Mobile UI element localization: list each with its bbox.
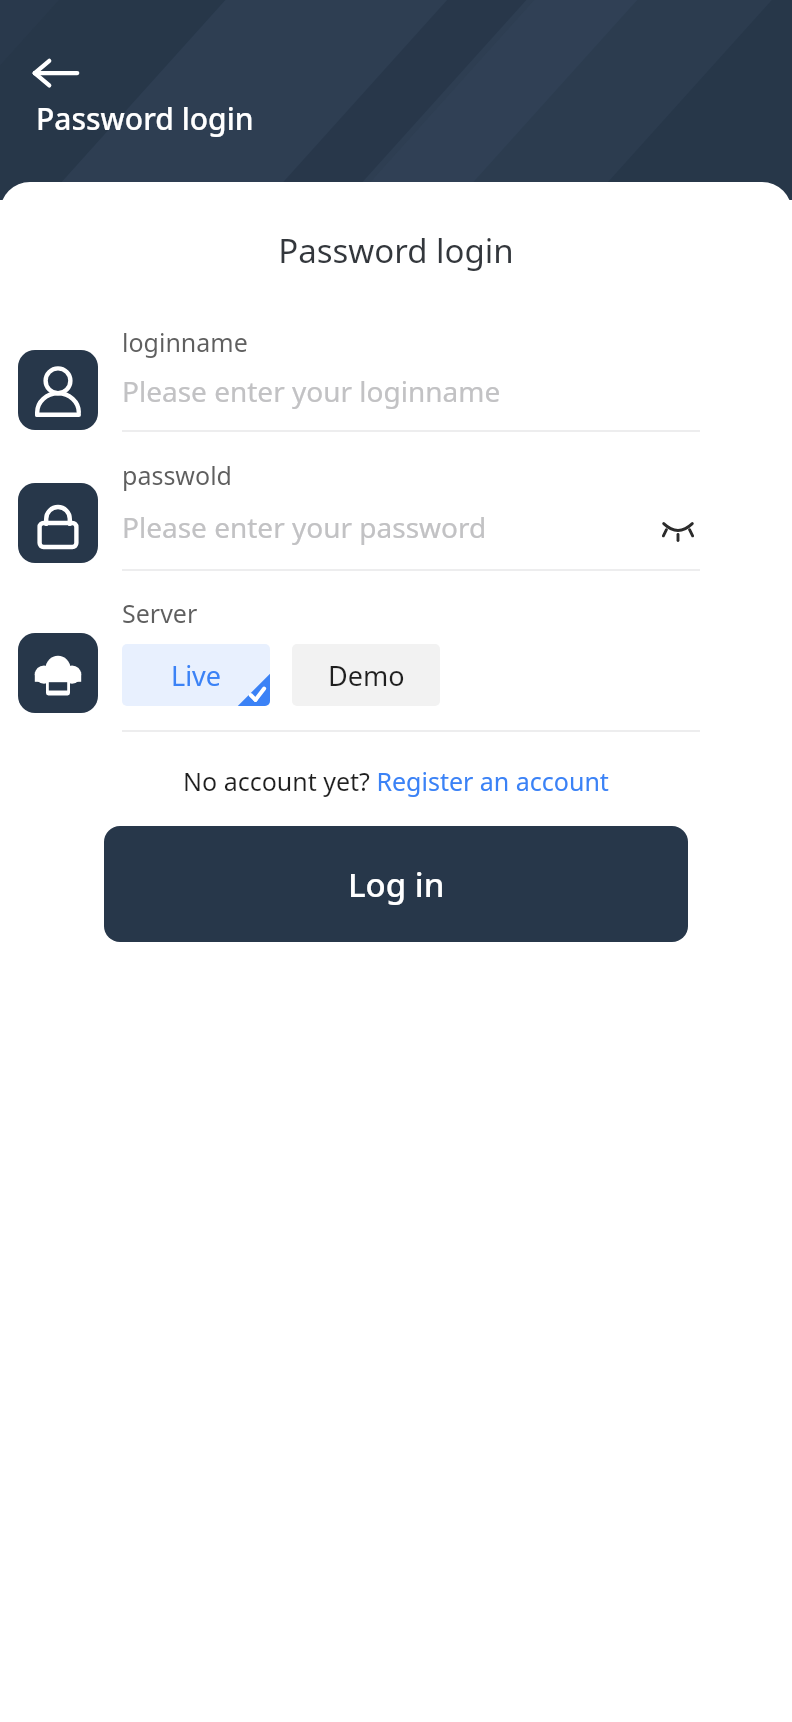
staticText: Password login <box>0 228 792 273</box>
button[interactable]: Live <box>122 644 270 706</box>
button[interactable]: Demo <box>292 644 440 706</box>
staticText: Demo <box>328 657 405 694</box>
staticText: passwold <box>122 458 232 492</box>
staticText: loginname <box>122 325 248 359</box>
staticText: Please enter your password <box>122 508 656 546</box>
staticText: Live <box>171 657 222 694</box>
staticText: Password login <box>36 98 254 139</box>
button[interactable]: passwold <box>0 458 792 571</box>
button[interactable]: Show password <box>656 505 700 549</box>
button[interactable]: loginname <box>0 325 792 432</box>
staticText: Please enter your loginname <box>122 372 700 410</box>
button[interactable]: Log in <box>104 826 688 942</box>
button[interactable]: Back <box>28 44 84 100</box>
staticText: Log in <box>348 862 445 907</box>
staticText: No account yet? Register an account <box>183 764 609 798</box>
button[interactable]: No account yet? Register an account <box>183 764 609 798</box>
staticText: Server <box>122 596 198 630</box>
